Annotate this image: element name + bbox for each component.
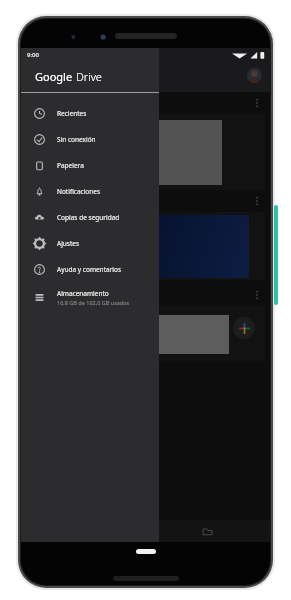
button[interactable]: Papelera [21,152,159,178]
staticText: 16,8 GB de 102,0 GB usados [57,299,130,306]
button[interactable]: Recientes [21,100,159,126]
button[interactable]: Ajustes [21,230,159,256]
staticText: Ayuda y comentarios [57,265,122,274]
button[interactable]: Copias de seguridad [21,204,159,230]
button[interactable]: Sin conexión [21,126,159,152]
staticText: Notificaciones [57,187,101,196]
staticText: 9:00 [27,51,39,59]
button[interactable]: Ayuda y comentarios [21,256,159,282]
button[interactable]: Almacenamiento [21,282,159,312]
button[interactable]: Curriculum Vitae.pdf [21,92,270,114]
staticText: Papelera [57,161,84,170]
staticText: Copias de seguridad [57,213,120,222]
staticText: Recientes [57,109,87,118]
button[interactable]: Más opciones [252,287,262,303]
button[interactable]: Cuenta [247,68,262,83]
staticText: Google [35,69,73,84]
staticText: Sin conexión [57,135,96,144]
button[interactable] [26,212,265,280]
button[interactable]: Archivos [145,520,270,542]
button[interactable]: Crear [26,306,265,362]
staticText: Almacenamiento [57,289,109,298]
staticText: Drive [76,69,102,84]
button[interactable]: ...odified.png [21,190,270,212]
button[interactable]: Más opciones [252,193,262,209]
button[interactable]: RUIZ CHRISTIAN.pdf [21,284,270,306]
button[interactable] [26,114,265,190]
button[interactable]: Crear [233,317,255,339]
staticText: Ajustes [57,239,80,248]
button[interactable]: Notificaciones [21,178,159,204]
button[interactable]: Más opciones [252,95,262,111]
staticText: RUIZ CHRISTIAN.pdf [43,291,101,299]
